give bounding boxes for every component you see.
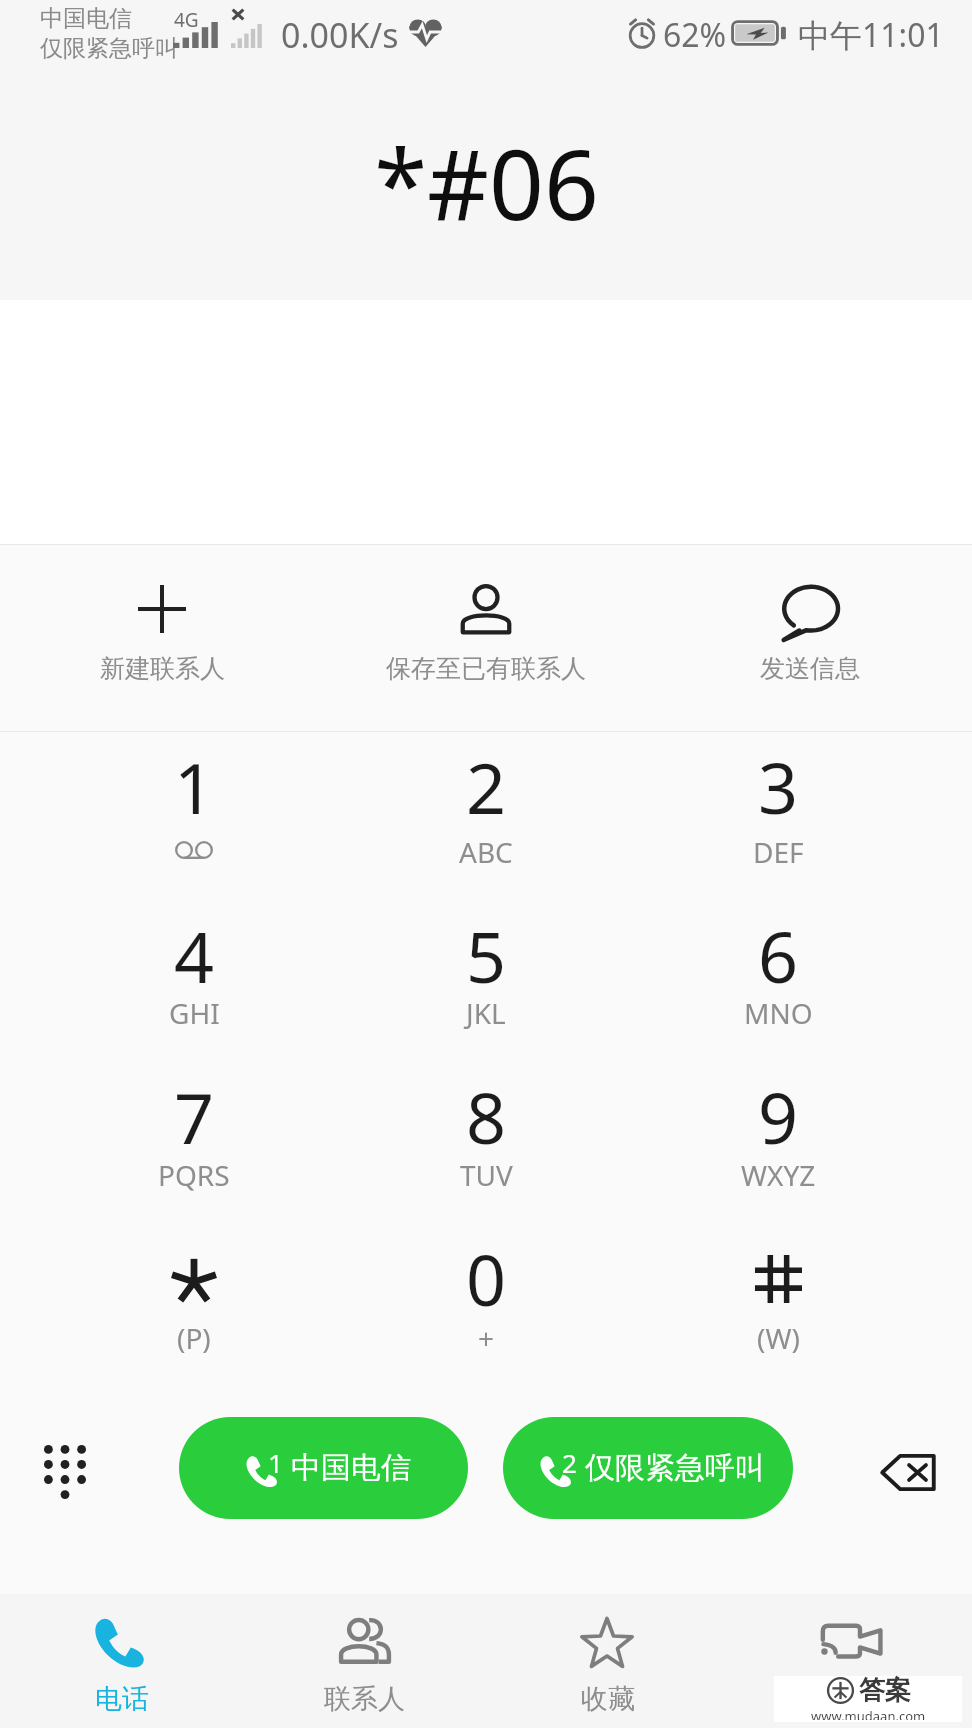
button[interactable]: 2 [340,739,632,903]
button[interactable]: 0 [340,1231,632,1395]
staticText: 5 [466,908,507,1003]
staticText: 62% [663,13,727,57]
staticText: (W) [757,1319,800,1357]
staticText: 仅限紧急呼叫 [585,1449,765,1487]
button[interactable]: 新建联系人 [0,545,324,731]
staticText: GHI [169,994,220,1032]
staticText: (P) [177,1319,211,1357]
button[interactable]: 5 [340,908,632,1072]
staticText: 联系人 [324,1682,405,1716]
staticText: 保存至已有联系人 [386,653,586,684]
staticText: 2 [466,739,507,834]
staticText: MNO [744,994,813,1032]
button[interactable]: 4 [48,908,340,1072]
staticText: 仅限紧急呼叫 [40,34,178,63]
staticText: 中午11:01 [798,13,944,57]
staticText: 0.00K/s [281,12,399,58]
button[interactable]: Backspace [875,1439,941,1505]
staticText: ABC [459,833,513,871]
button[interactable]: 1 [48,739,340,903]
staticText: www.mudaan.com [811,1707,926,1720]
staticText: 中国电信 [40,4,132,33]
staticText: 新建联系人 [100,653,225,684]
button[interactable]: 6 [632,908,924,1072]
staticText: WXYZ [741,1156,816,1194]
staticText: 1 [268,1445,283,1480]
button[interactable]: 9 [632,1069,924,1233]
staticText: 8 [466,1069,507,1164]
button[interactable]: 1 [179,1417,468,1519]
button[interactable]: (P) [48,1231,340,1395]
staticText: 中国电信 [291,1449,411,1487]
staticText: *#06 [374,117,599,248]
staticText: 4 [174,908,215,1003]
staticText: 视频 [824,1682,878,1716]
staticText: 6 [758,908,799,1003]
button[interactable]: 发送信息 [648,545,972,731]
button[interactable]: 电话 [0,1594,243,1728]
button[interactable]: 联系人 [243,1594,486,1728]
staticText: PQRS [158,1156,230,1194]
staticText: 2 [562,1445,577,1480]
staticText: JKL [466,994,506,1032]
staticText: 电话 [95,1682,149,1716]
staticText: 4G [174,7,199,33]
button[interactable]: 2 [503,1417,793,1519]
staticText: 1 [174,739,215,834]
button[interactable]: 保存至已有联系人 [324,545,648,731]
button[interactable]: 收藏 [486,1594,729,1728]
staticText: 答案 [859,1674,911,1707]
button[interactable]: 8 [340,1069,632,1233]
staticText: 发送信息 [760,653,860,684]
staticText: + [478,1319,495,1357]
button[interactable]: 7 [48,1069,340,1233]
staticText: TUV [460,1156,513,1194]
staticText: 9 [758,1069,799,1164]
staticText: 3 [758,739,799,834]
button[interactable]: (W) [632,1231,924,1395]
staticText: DEF [753,833,804,871]
button[interactable]: 3 [632,739,924,903]
staticText: 0 [466,1231,507,1326]
button[interactable]: 视频 [729,1594,972,1728]
staticText: 7 [174,1069,215,1164]
button[interactable]: Show keypad [32,1439,98,1505]
staticText: 收藏 [581,1682,635,1716]
